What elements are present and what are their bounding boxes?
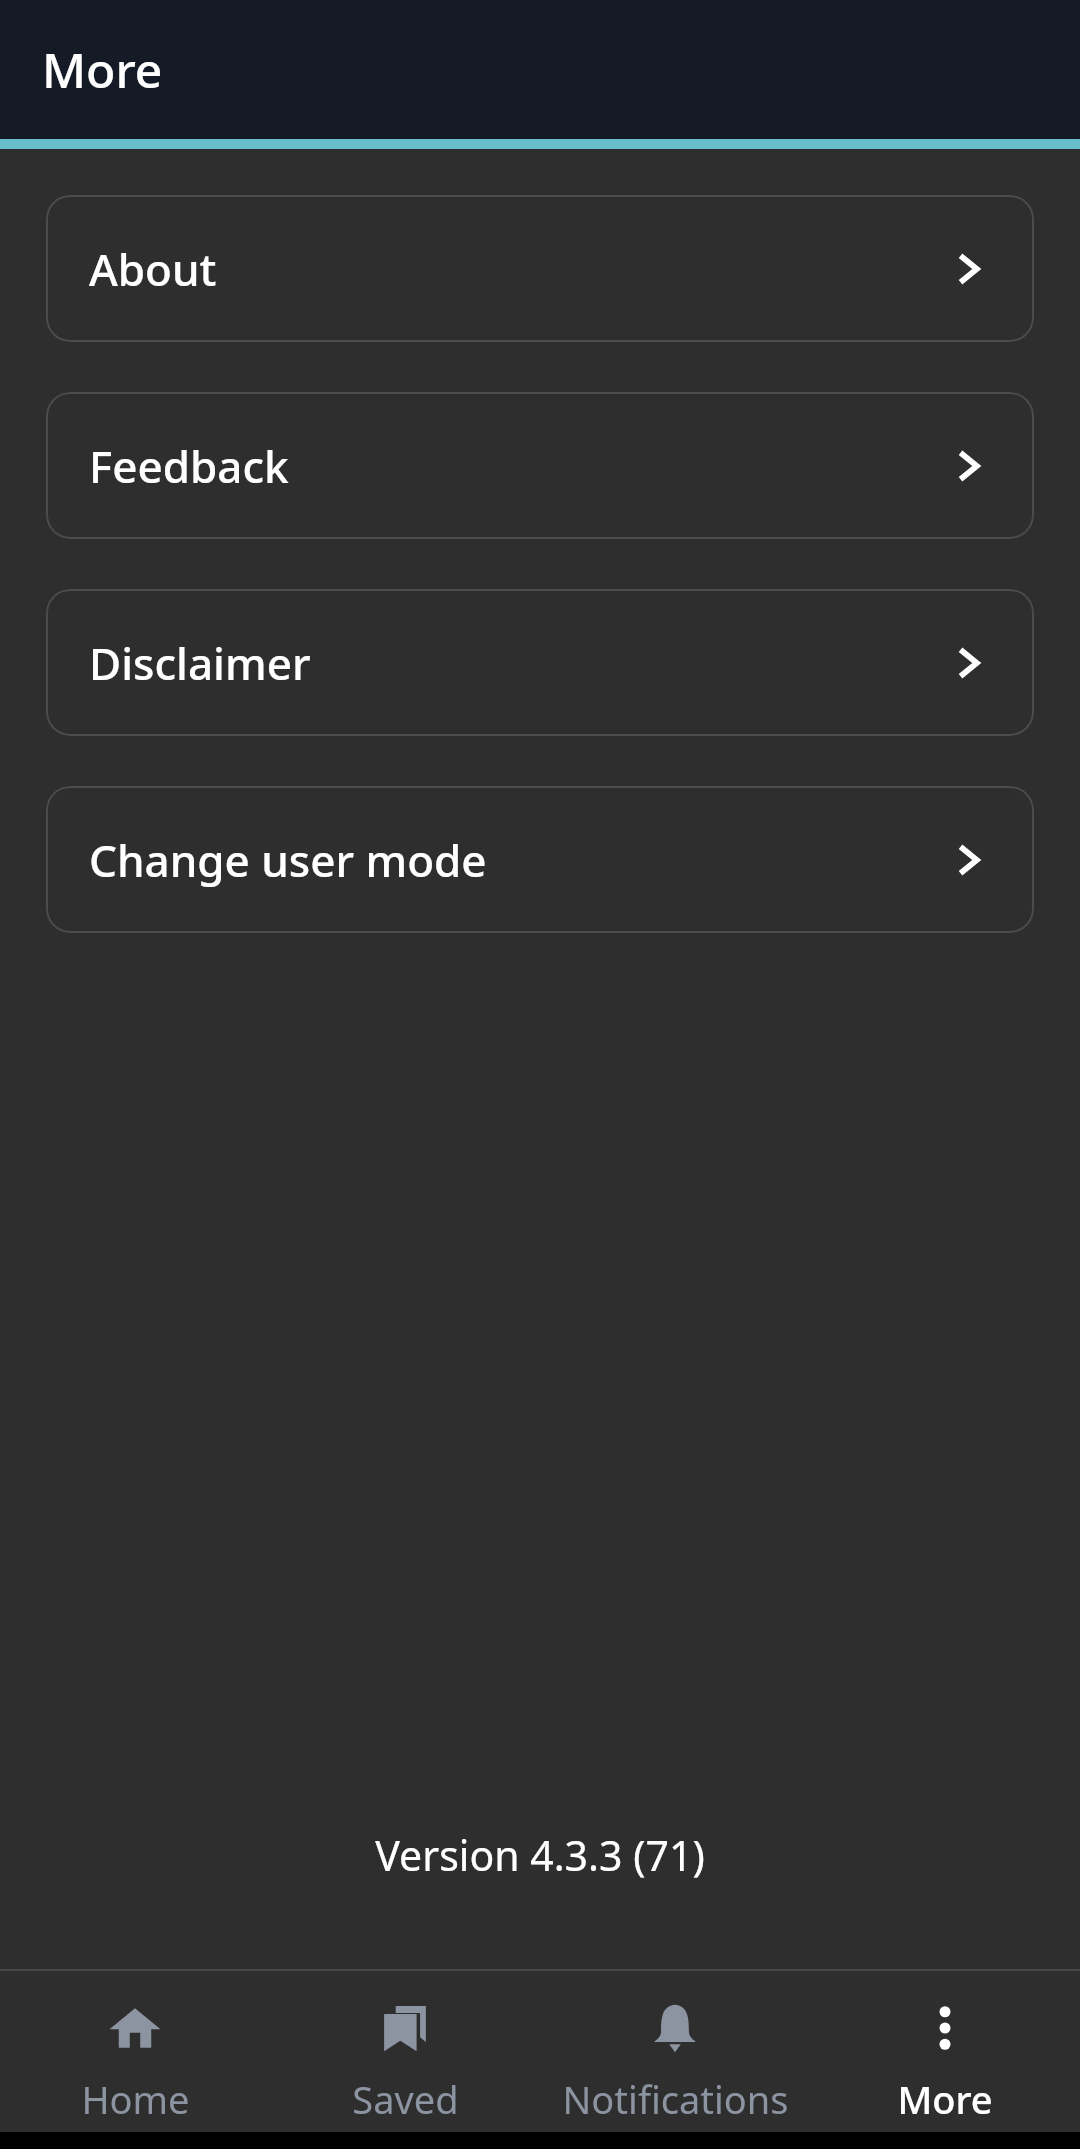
staticText: About xyxy=(89,239,217,299)
button[interactable]: Saved xyxy=(270,1971,540,2125)
staticText: More xyxy=(42,37,163,102)
button[interactable]: Disclaimer xyxy=(46,589,1034,736)
button[interactable]: More xyxy=(810,1971,1080,2125)
staticText: More xyxy=(897,2073,993,2125)
staticText: Home xyxy=(81,2073,190,2125)
staticText: Change user mode xyxy=(89,830,487,890)
staticText: Saved xyxy=(352,2073,459,2125)
staticText: Notifications xyxy=(562,2073,789,2125)
button[interactable]: Home xyxy=(0,1971,270,2125)
button[interactable]: About xyxy=(46,195,1034,342)
staticText: Feedback xyxy=(89,436,289,496)
staticText: Disclaimer xyxy=(89,633,311,693)
button[interactable]: Notifications xyxy=(540,1971,810,2125)
button[interactable]: Change user mode xyxy=(46,786,1034,933)
button[interactable]: Feedback xyxy=(46,392,1034,539)
staticText: Version 4.3.3 (71) xyxy=(0,1827,1080,1883)
